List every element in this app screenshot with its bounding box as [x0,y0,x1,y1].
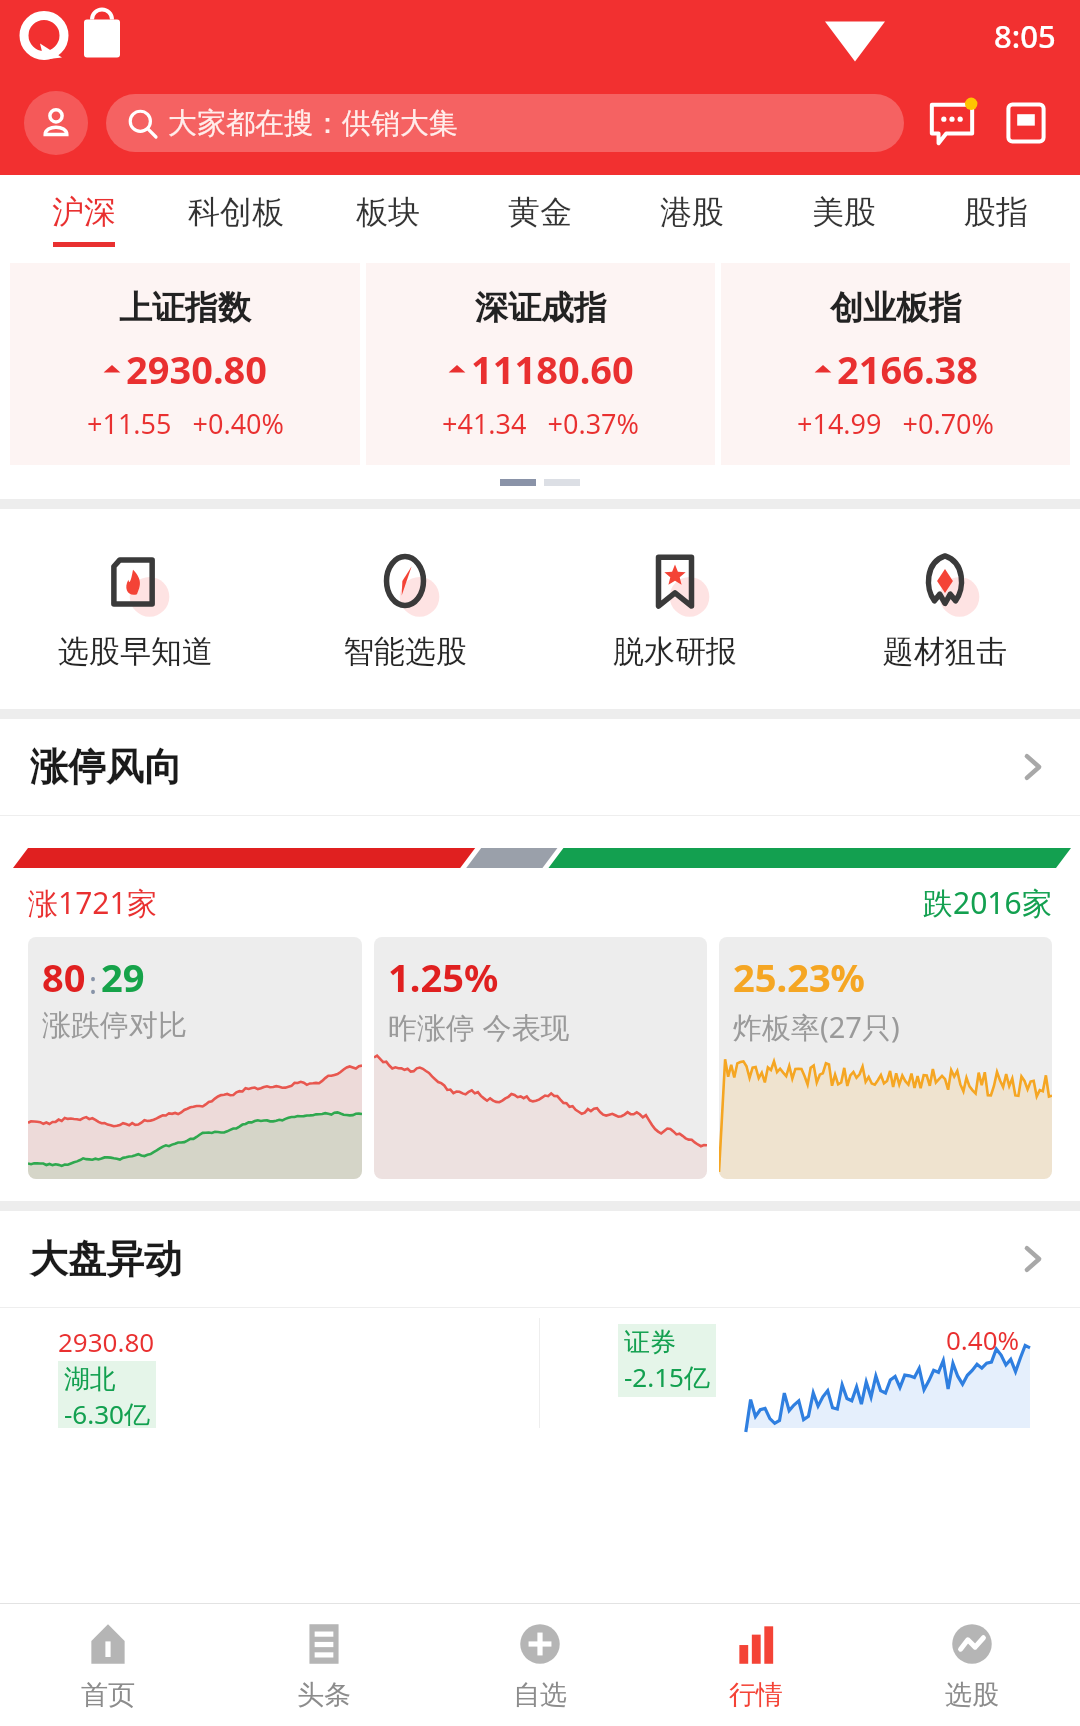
button[interactable]: Scan [996,93,1056,153]
staticText: 大盘异动 [30,1235,182,1283]
button[interactable]: 深证成指 [366,263,715,465]
button[interactable]: 行情 [648,1604,864,1726]
staticText: 2930.80 [58,1324,155,1359]
button[interactable]: 沪深 [8,175,160,263]
staticText: 题材狙击 [883,632,1007,671]
staticText: 80 [42,951,86,1003]
staticText: 深证成指 [475,287,607,329]
staticText: 涨跌停对比 [42,1007,187,1044]
staticText: 湖北 [64,1363,116,1396]
button[interactable]: 股指 [920,175,1072,263]
staticText: 选股早知道 [58,632,213,671]
button[interactable]: 科创板 [160,175,312,263]
button[interactable]: 涨停风向 [0,719,1080,815]
staticText: 黄金 [508,192,572,232]
button[interactable]: 美股 [768,175,920,263]
staticText: 跌2016家 [923,882,1052,923]
button[interactable]: 自选 [432,1604,648,1726]
staticText: 创业板指 [830,287,962,329]
staticText: 行情 [729,1678,783,1712]
staticText: 8:05 [994,15,1056,57]
staticText: 炸板率(27只) [733,1007,900,1047]
staticText: 上证指数 [119,287,251,329]
staticText: 板块 [356,192,420,232]
button[interactable]: Messages [922,93,982,153]
button[interactable]: 大家都在搜：供销大集 [106,94,904,152]
staticText: 大家都在搜：供销大集 [168,105,458,142]
staticText: 港股 [660,192,724,232]
button[interactable]: 1.25% [374,937,707,1179]
button[interactable]: 25.23% [719,937,1052,1179]
button[interactable]: 港股 [616,175,768,263]
staticText: +14.99 +0.70% [797,405,994,442]
button[interactable]: 选股早知道 [0,509,270,709]
staticText: 选股 [945,1678,999,1712]
button[interactable]: 创业板指 [721,263,1070,465]
staticText: 智能选股 [343,632,467,671]
staticText: +41.34 +0.37% [442,405,639,442]
staticText: 0.40% [946,1322,1020,1357]
staticText: 29 [101,951,145,1003]
button[interactable]: 上证指数 [10,263,360,465]
staticText: : [89,962,98,1003]
staticText: 自选 [513,1678,567,1712]
staticText: -2.15亿 [624,1359,710,1395]
staticText: 2930.80 [126,343,268,395]
button[interactable]: Profile [24,91,88,155]
button[interactable]: 智能选股 [270,509,540,709]
button[interactable]: 大盘异动 [0,1211,1080,1307]
staticText: 昨涨停 今表现 [388,1007,570,1047]
button[interactable]: 80 [28,937,362,1179]
button[interactable]: 板块 [312,175,464,263]
staticText: 2166.38 [837,343,979,395]
staticText: 证券 [624,1326,676,1359]
button[interactable]: 选股 [864,1604,1080,1726]
button[interactable]: 头条 [216,1604,432,1726]
staticText: 1.25% [388,951,499,1003]
button[interactable]: 黄金 [464,175,616,263]
staticText: 涨1721家 [28,882,157,923]
staticText: +11.55 +0.40% [87,405,284,442]
staticText: 头条 [297,1678,351,1712]
staticText: -6.30亿 [64,1396,150,1426]
button[interactable]: 首页 [0,1604,216,1726]
staticText: 股指 [964,192,1028,232]
button[interactable]: 脱水研报 [540,509,810,709]
staticText: 脱水研报 [613,632,737,671]
staticText: 美股 [812,192,876,232]
button[interactable]: 题材狙击 [810,509,1080,709]
staticText: 沪深 [52,192,116,232]
staticText: 涨停风向 [30,743,182,791]
staticText: 25.23% [733,951,865,1003]
staticText: 首页 [81,1678,135,1712]
staticText: 科创板 [188,192,284,232]
staticText: 11180.60 [471,343,634,395]
